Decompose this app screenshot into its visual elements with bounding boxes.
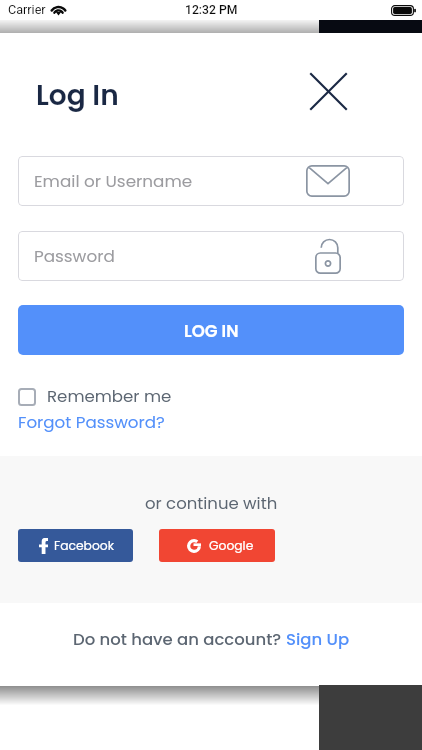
- staticText: Remember me: [47, 385, 172, 408]
- staticText: Carrier: [8, 2, 46, 17]
- button[interactable]: Password: [18, 231, 404, 281]
- staticText: or continue with: [145, 492, 278, 515]
- staticText: Facebook: [54, 537, 114, 554]
- button[interactable]: Email or Username: [18, 156, 404, 206]
- button[interactable]: LOG IN: [18, 305, 404, 355]
- staticText: Google: [209, 537, 254, 554]
- staticText: Email or Username: [34, 169, 193, 193]
- button[interactable]: Forgot Password?: [18, 410, 165, 433]
- button[interactable]: Google: [159, 529, 275, 562]
- button[interactable]: Facebook: [18, 529, 133, 562]
- staticText: LOG IN: [184, 319, 239, 342]
- staticText: 12:32 PM: [185, 3, 238, 17]
- staticText: Sign Up: [286, 628, 350, 651]
- button[interactable]: Sign Up: [286, 628, 350, 651]
- staticText: Log In: [36, 76, 119, 115]
- button[interactable]: Close: [306, 69, 350, 113]
- staticText: Do not have an account?: [73, 628, 286, 651]
- staticText: Password: [34, 244, 115, 268]
- button[interactable]: Remember me: [18, 385, 172, 408]
- staticText: Forgot Password?: [18, 410, 165, 433]
